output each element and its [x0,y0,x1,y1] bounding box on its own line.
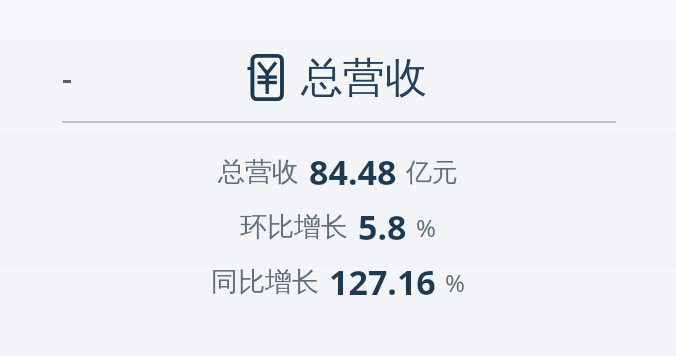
staticText: % [416,211,436,244]
staticText: 127.16 [329,259,436,305]
button[interactable]: 同比增长 [211,259,465,305]
staticText: 同比增长 [211,265,319,299]
other: Revenue [249,55,283,100]
button[interactable]: 总营收 [218,149,458,195]
staticText: 总营收 [301,52,427,105]
staticText: 环比增长 [240,210,348,244]
staticText: 84.48 [309,149,397,195]
staticText: 亿元 [406,156,458,189]
button[interactable]: Revenue [0,52,676,105]
staticText: 5.8 [358,204,407,250]
staticText: 总营收 [218,155,299,189]
staticText: % [445,266,465,299]
button[interactable]: 环比增长 [240,204,436,250]
